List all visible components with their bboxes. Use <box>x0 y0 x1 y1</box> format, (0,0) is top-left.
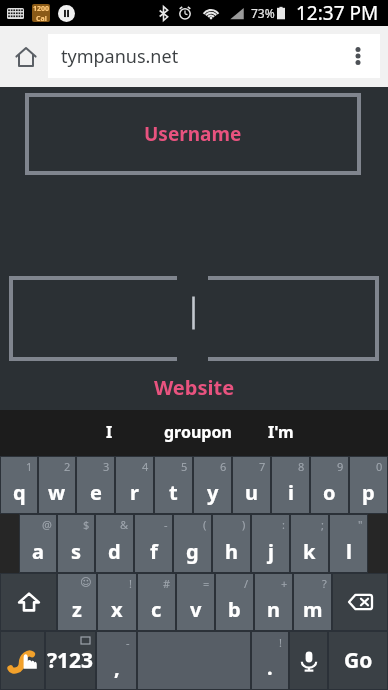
staticText: $ <box>83 517 90 532</box>
staticText: ! <box>129 576 132 591</box>
button[interactable]: 9 <box>311 457 348 513</box>
staticText: 4 <box>142 459 149 474</box>
staticText: y <box>207 479 219 506</box>
staticText: Go <box>344 646 373 675</box>
staticText: b <box>228 596 241 623</box>
button[interactable]: 5 <box>155 457 192 513</box>
staticText: 1 <box>26 459 33 474</box>
staticText: / <box>244 576 249 591</box>
button[interactable]: 0 <box>350 457 387 513</box>
staticText: g <box>186 538 199 565</box>
staticText: j <box>268 538 274 565</box>
button[interactable]: / <box>216 574 253 630</box>
button[interactable]: @ <box>20 515 56 572</box>
staticText: o <box>323 479 336 506</box>
staticText: 5 <box>181 459 188 474</box>
staticText: I'm <box>268 421 294 443</box>
staticText: ? <box>322 576 327 591</box>
button[interactable]: I'm <box>254 410 308 454</box>
staticText: ) <box>242 517 246 532</box>
staticText: # <box>163 576 171 591</box>
staticText: ! <box>279 635 282 650</box>
staticText: u <box>245 479 258 506</box>
staticText: . <box>267 654 273 681</box>
button[interactable]: Symbols <box>46 632 95 689</box>
staticText: z <box>72 596 82 623</box>
button[interactable]: Delete <box>333 574 387 630</box>
staticText: , <box>114 654 120 681</box>
button[interactable]: 8 <box>272 457 309 513</box>
staticText: i <box>288 479 294 506</box>
staticText: = <box>203 576 210 591</box>
staticText: q <box>13 479 26 506</box>
staticText: p <box>362 479 375 506</box>
button[interactable]: = <box>177 574 214 630</box>
button[interactable]: 1 <box>1 457 37 513</box>
button[interactable]: Shift <box>1 574 56 630</box>
staticText: 2 <box>64 459 71 474</box>
staticText: d <box>108 538 121 565</box>
staticText: Username <box>144 121 242 147</box>
staticText: + <box>281 576 288 591</box>
button[interactable]: tympanus.net <box>48 34 380 78</box>
staticText: r <box>130 479 139 506</box>
button[interactable]: Home <box>4 26 48 87</box>
button[interactable]: 7 <box>233 457 270 513</box>
button[interactable]: & <box>96 515 133 572</box>
staticText: s <box>71 538 82 565</box>
button[interactable]: Input method <box>1 632 44 689</box>
button[interactable]: 2 <box>39 457 75 513</box>
staticText: w <box>48 479 66 506</box>
button[interactable]: I <box>92 410 127 454</box>
staticText: - <box>126 635 130 650</box>
button[interactable]: Go <box>329 632 387 689</box>
button[interactable]: 3 <box>77 457 114 513</box>
staticText: groupon <box>164 421 232 443</box>
button[interactable]: ( <box>174 515 211 572</box>
staticText: e <box>90 479 102 506</box>
button[interactable]: ☺ <box>58 574 96 630</box>
button[interactable]: groupon <box>150 410 246 454</box>
button[interactable]: # <box>138 574 175 630</box>
staticText: 6 <box>220 459 227 474</box>
staticText: @ <box>42 517 52 532</box>
staticText: 0 <box>376 459 383 474</box>
button[interactable]: - <box>97 632 136 689</box>
staticText: x <box>111 596 123 623</box>
button[interactable]: ) <box>213 515 250 572</box>
button[interactable]: More options <box>336 34 380 78</box>
staticText: Cal <box>36 14 47 22</box>
staticText: 7 <box>259 459 266 474</box>
staticText: ?123 <box>47 646 94 675</box>
staticText: ; <box>321 517 324 532</box>
staticText: I <box>106 421 113 443</box>
staticText: t <box>169 479 178 506</box>
staticText: v <box>190 596 202 623</box>
button[interactable]: $ <box>58 515 94 572</box>
button[interactable]: Voice input <box>290 632 327 689</box>
button[interactable]: - <box>135 515 172 572</box>
staticText: " <box>358 517 363 532</box>
staticText: Website <box>0 374 388 401</box>
staticText: 1200 <box>33 4 50 14</box>
button[interactable]: " <box>330 515 367 572</box>
button[interactable]: 6 <box>194 457 231 513</box>
staticText: ( <box>203 517 207 532</box>
staticText: tympanus.net <box>61 44 179 69</box>
staticText: a <box>32 538 44 565</box>
staticText: 8 <box>298 459 305 474</box>
button[interactable]: 4 <box>116 457 153 513</box>
button[interactable]: + <box>255 574 292 630</box>
button[interactable]: ! <box>252 632 288 689</box>
button[interactable]: ? <box>294 574 331 630</box>
staticText: & <box>120 517 129 532</box>
button[interactable]: : <box>252 515 289 572</box>
staticText: k <box>303 538 316 565</box>
staticText: - <box>164 517 168 532</box>
staticText: : <box>282 517 285 532</box>
button[interactable]: ! <box>98 574 136 630</box>
staticText: h <box>225 538 238 565</box>
button[interactable]: ; <box>291 515 328 572</box>
staticText: 12:37 PM <box>296 0 379 26</box>
